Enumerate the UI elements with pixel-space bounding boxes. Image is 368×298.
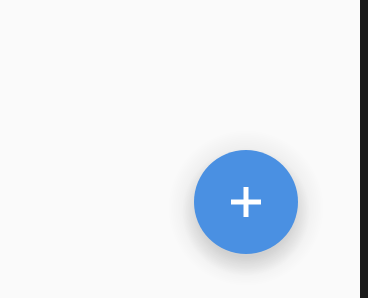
button[interactable]: Add	[194, 150, 298, 254]
